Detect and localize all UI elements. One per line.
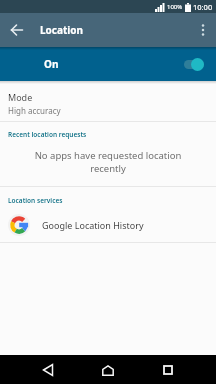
button[interactable]: [36, 358, 60, 382]
button[interactable]: Google Location History: [0, 212, 216, 238]
button[interactable]: Mode: [0, 87, 216, 121]
button[interactable]: [156, 358, 180, 382]
button[interactable]: On: [0, 47, 216, 81]
staticText: Recent location requests: [8, 130, 87, 139]
staticText: On: [44, 57, 59, 71]
staticText: Location: [40, 23, 84, 37]
staticText: 10:00: [193, 2, 213, 12]
staticText: Mode: [8, 91, 33, 103]
button[interactable]: [96, 358, 120, 382]
button[interactable]: [6, 19, 28, 41]
staticText: High accuracy: [8, 105, 61, 116]
staticText: 100%: [167, 3, 183, 11]
staticText: No apps have requested location recently: [0, 149, 216, 175]
staticText: Location services: [8, 196, 63, 205]
button[interactable]: [195, 22, 211, 38]
staticText: Google Location History: [42, 219, 144, 231]
